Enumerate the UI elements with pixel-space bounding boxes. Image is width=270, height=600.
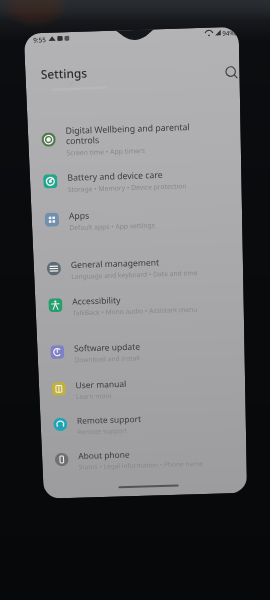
button[interactable]: General management — [33, 245, 243, 287]
staticText: Download and install — [74, 353, 140, 364]
button[interactable]: Accessibility — [35, 282, 244, 323]
button[interactable]: Battery and device care — [29, 157, 242, 200]
staticText: User manual — [75, 378, 127, 391]
staticText: Status • Legal information • Phone name — [78, 459, 204, 471]
staticText: Accessibility — [72, 294, 121, 308]
staticText: Remote support — [77, 413, 142, 427]
staticText: Apps — [69, 209, 90, 222]
staticText: Digital Wellbeing and parental controls — [65, 121, 196, 147]
button[interactable]: Software update — [37, 329, 245, 370]
button[interactable]: Remote support — [40, 402, 246, 442]
staticText: Learn more — [76, 391, 112, 401]
staticText: Language and keyboard • Date and time — [71, 268, 198, 281]
button[interactable]: About phone — [41, 437, 247, 477]
staticText: Remote support — [77, 426, 127, 436]
button[interactable]: Digital Wellbeing and parental controls — [27, 115, 241, 159]
staticText: Default apps • App settings — [69, 220, 156, 232]
staticText: About phone — [78, 449, 130, 462]
staticText: Screen time • App timers — [66, 146, 146, 157]
staticText: Storage • Memory • Device protection — [68, 181, 187, 194]
staticText: General management — [71, 256, 160, 271]
staticText: Software update — [74, 341, 140, 354]
staticText: TalkBack • Mono audio • Assistant menu — [72, 305, 198, 317]
staticText: Battery and device care — [67, 169, 164, 184]
button[interactable]: User manual — [38, 366, 245, 407]
button[interactable]: Search — [222, 63, 240, 82]
button[interactable]: Apps — [31, 196, 242, 238]
staticText: Settings — [40, 65, 88, 83]
staticText: 9:55 — [33, 35, 47, 44]
staticText: 94% — [222, 29, 235, 38]
